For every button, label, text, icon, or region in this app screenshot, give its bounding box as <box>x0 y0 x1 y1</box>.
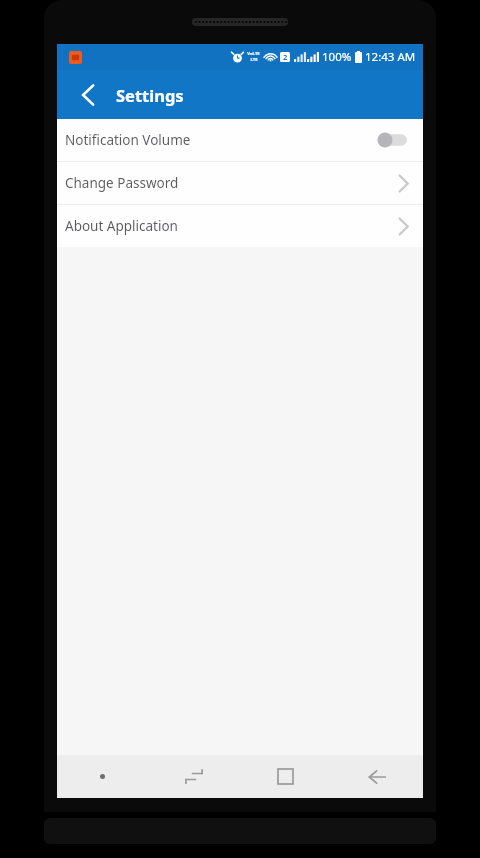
button[interactable]: Change Password <box>57 162 423 204</box>
button[interactable]: Menu <box>57 755 148 798</box>
button[interactable]: Back <box>331 755 423 798</box>
staticText: About Application <box>65 217 398 235</box>
staticText: Notification Volume <box>65 131 377 149</box>
staticText: Change Password <box>65 174 398 192</box>
staticText: 2 <box>283 52 288 62</box>
staticText: VoLTE <box>247 51 260 57</box>
button[interactable]: Back <box>71 78 105 112</box>
staticText: Settings <box>116 84 184 106</box>
button[interactable]: About Application <box>57 205 423 247</box>
staticText: 100% <box>322 49 352 65</box>
button[interactable]: Notification Volume <box>57 119 423 161</box>
button[interactable]: Switch input method <box>148 755 239 798</box>
staticText: 12:43 AM <box>365 49 416 65</box>
button[interactable]: Recent apps <box>239 755 331 798</box>
staticText: LTE <box>250 57 258 63</box>
